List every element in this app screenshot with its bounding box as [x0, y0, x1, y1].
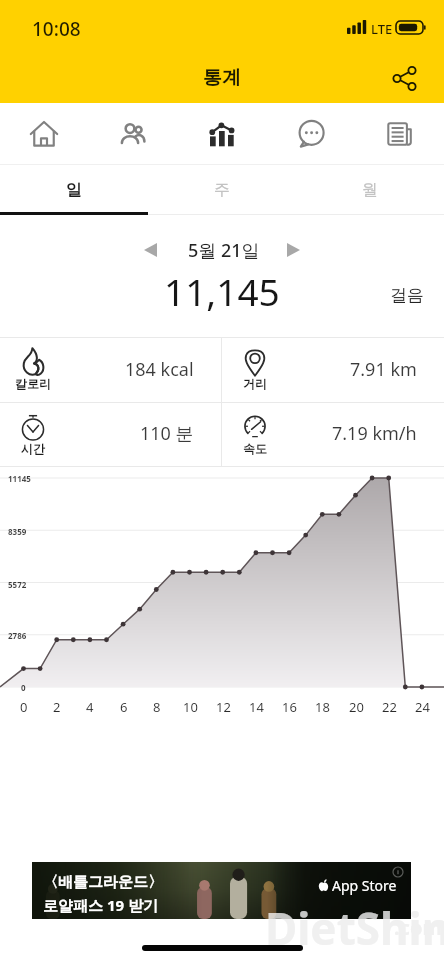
staticText: 7.91 km [350, 357, 417, 382]
staticText: 거리 [222, 376, 288, 391]
button[interactable] [88, 103, 177, 164]
button[interactable]: 일 [0, 165, 148, 215]
staticText: 속도 [222, 441, 288, 456]
staticText: 월 [362, 180, 378, 200]
staticText: App Store [332, 876, 397, 895]
button[interactable] [177, 103, 266, 164]
staticText: 로얄패스 19 받기 [43, 895, 158, 915]
staticText: DietShin [265, 898, 444, 958]
staticText: 통계 [203, 66, 241, 90]
staticText: LTE [371, 20, 393, 38]
staticText: 22 [382, 698, 397, 716]
staticText: 7.19 km/h [332, 421, 417, 446]
staticText: 걸음 [390, 285, 424, 306]
staticText: 주 [214, 180, 230, 200]
staticText: 시간 [0, 441, 66, 456]
button[interactable] [266, 103, 355, 164]
staticText: 184 kcal [125, 357, 194, 382]
staticText: 12 [216, 698, 231, 716]
button[interactable]: Share [384, 58, 424, 98]
button[interactable]: 속도 [222, 403, 444, 466]
staticText: 110 분 [140, 421, 194, 446]
staticText: 일 [66, 180, 82, 200]
staticText: .com [394, 914, 442, 941]
staticText: 0 [20, 698, 28, 716]
staticText: 5572 [8, 579, 27, 590]
button[interactable]: 〈배틀그라운드〉 [32, 862, 411, 919]
staticText: 0 [21, 682, 26, 693]
staticText: 4 [86, 698, 94, 716]
staticText: 11,145 [164, 266, 280, 316]
button[interactable]: 거리 [222, 338, 444, 402]
staticText: 10 [183, 698, 198, 716]
button[interactable]: Next day [276, 239, 311, 261]
staticText: 24 [415, 698, 430, 716]
staticText: 〈배틀그라운드〉 [43, 873, 163, 892]
button[interactable]: 시간 [0, 403, 221, 466]
button[interactable]: Previous day [133, 239, 168, 261]
staticText: 16 [282, 698, 297, 716]
staticText: 8 [153, 698, 161, 716]
staticText: 18 [315, 698, 330, 716]
staticText: 11145 [8, 473, 31, 484]
staticText: 칼로리 [0, 376, 66, 391]
staticText: 8359 [8, 526, 27, 537]
staticText: 14 [249, 698, 264, 716]
staticText: 2 [53, 698, 61, 716]
staticText: DietShin [265, 898, 411, 919]
staticText: 2786 [8, 630, 27, 641]
staticText: 5월 21일 [188, 238, 260, 263]
button[interactable]: 칼로리 [0, 338, 221, 402]
button[interactable] [0, 103, 88, 164]
staticText: 20 [349, 698, 364, 716]
button[interactable] [355, 103, 444, 164]
button[interactable]: 주 [148, 165, 296, 215]
staticText: 10:08 [32, 16, 81, 42]
button[interactable]: 월 [296, 165, 444, 215]
staticText: 6 [120, 698, 128, 716]
